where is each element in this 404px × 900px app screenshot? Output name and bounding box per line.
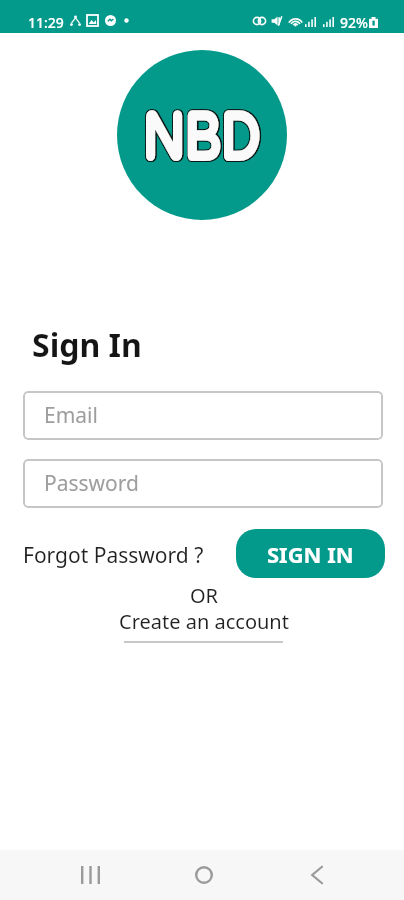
- staticText: NBD: [143, 100, 261, 179]
- staticText: NBD: [143, 99, 261, 178]
- staticText: NBD: [142, 99, 259, 178]
- staticText: Password: [44, 469, 139, 498]
- button[interactable]: Password: [23, 459, 383, 508]
- button[interactable]: Home: [180, 851, 228, 899]
- staticText: Email: [44, 401, 98, 430]
- staticText: NBD: [142, 100, 259, 179]
- button[interactable]: Forgot Password ?: [23, 541, 204, 570]
- staticText: SIGN IN: [267, 539, 354, 569]
- button[interactable]: SIGN IN: [236, 529, 385, 578]
- button[interactable]: Email: [23, 391, 383, 440]
- staticText: NBD: [142, 98, 259, 177]
- staticText: NBD: [143, 98, 261, 177]
- staticText: NBD: [141, 98, 259, 177]
- staticText: OR: [2, 582, 404, 609]
- button[interactable]: Back: [293, 851, 341, 899]
- staticText: Sign In: [32, 323, 142, 367]
- staticText: 11:29: [28, 13, 64, 32]
- staticText: NBD: [141, 100, 259, 179]
- staticText: 92%: [340, 13, 368, 32]
- staticText: NBD: [141, 99, 259, 178]
- button[interactable]: Recent apps: [66, 851, 114, 899]
- button[interactable]: Create an account: [119, 608, 289, 635]
